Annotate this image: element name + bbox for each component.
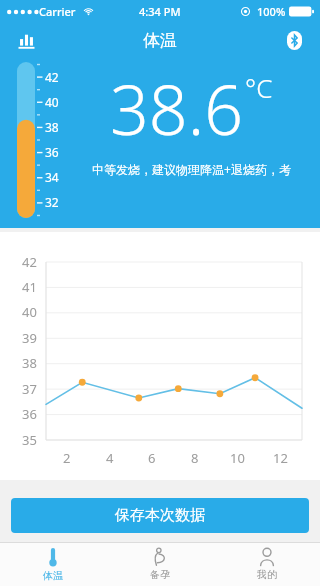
staticText: Carrier	[39, 4, 76, 19]
staticText: 39	[22, 329, 37, 347]
staticText: 37	[22, 380, 37, 398]
staticText: 12	[273, 449, 288, 467]
staticText: 36	[22, 405, 37, 423]
staticText: 42	[22, 253, 37, 271]
staticText: 保存本次数据	[115, 506, 205, 525]
button[interactable]: History chart	[9, 23, 43, 57]
button[interactable]: 我的	[213, 543, 320, 586]
button[interactable]: 保存本次数据	[11, 498, 309, 533]
staticText: 38	[45, 119, 59, 135]
staticText: 32	[45, 194, 59, 210]
staticText: 38	[22, 354, 37, 372]
staticText: 备孕	[150, 568, 170, 581]
staticText: 100%	[257, 4, 286, 19]
staticText: 4	[106, 449, 114, 467]
staticText: 体温	[143, 30, 177, 51]
staticText: 体温	[43, 569, 63, 582]
staticText: 41	[22, 278, 37, 296]
staticText: 我的	[257, 568, 277, 581]
staticText: 36	[45, 144, 59, 160]
staticText: 35	[22, 431, 37, 449]
staticText: 38.6	[110, 62, 244, 155]
staticText: 42	[45, 69, 59, 85]
staticText: °C	[245, 70, 273, 105]
staticText: 10	[230, 449, 245, 467]
button[interactable]: 体温	[0, 543, 106, 586]
staticText: 40	[22, 303, 37, 321]
staticText: 34	[45, 169, 59, 185]
button[interactable]: Bluetooth	[277, 23, 311, 57]
staticText: 中等发烧，建议物理降温+退烧药，考	[92, 161, 291, 177]
button[interactable]: 备孕	[106, 543, 213, 586]
staticText: 40	[45, 94, 59, 110]
staticText: 6	[148, 449, 156, 467]
staticText: 8	[191, 449, 199, 467]
staticText: 4:34 PM	[139, 4, 181, 19]
staticText: 2	[63, 449, 71, 467]
